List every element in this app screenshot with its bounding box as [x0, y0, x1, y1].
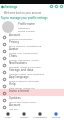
staticText: Communities — [33, 116, 47, 119]
staticText: Network usage, auto download — [9, 72, 45, 75]
staticText: App language — [9, 75, 29, 79]
button[interactable]: Account — [0, 33, 64, 40]
staticText: Log out — [9, 107, 18, 110]
staticText: Block contacts, disappearing — [9, 44, 42, 47]
staticText: Account — [9, 33, 21, 37]
button[interactable]: More — [59, 4, 64, 9]
staticText: Help centre, contact us — [9, 86, 35, 89]
button[interactable]: Storage and data — [0, 68, 64, 75]
button[interactable]: Invite a friend — [0, 89, 64, 96]
button[interactable]: Notifications — [0, 61, 64, 68]
staticText: Avatar — [9, 47, 19, 51]
button[interactable]: Privacy — [0, 40, 64, 47]
button[interactable]: Communities — [32, 110, 48, 120]
button[interactable]: Chats — [0, 110, 16, 120]
staticText: Updates — [9, 96, 21, 100]
staticText: phone number — [18, 29, 35, 32]
staticText: Chats — [5, 116, 11, 119]
button[interactable]: App language — [0, 75, 64, 82]
staticText: Chats — [9, 54, 17, 58]
button[interactable]: Back — [0, 4, 5, 9]
staticText: Notifications — [9, 61, 27, 65]
staticText: Security notifications — [9, 37, 33, 40]
button[interactable]: Updates — [16, 110, 32, 120]
staticText: Welcome back to your account — [4, 11, 42, 15]
button[interactable]: Avatar — [0, 47, 64, 54]
staticText: status text — [18, 26, 30, 29]
staticText: Invite a friend — [9, 89, 29, 93]
staticText: Account — [9, 103, 21, 107]
staticText: Theme, wallpapers, history — [9, 58, 40, 61]
staticText: Profile name — [18, 22, 35, 26]
staticText: Storage and data — [9, 68, 34, 72]
staticText: Help — [9, 82, 16, 86]
button[interactable]: Updates — [0, 96, 64, 103]
staticText: Updates — [20, 116, 29, 119]
staticText: Message, group & call tones — [9, 65, 41, 68]
button[interactable]: Camera — [54, 4, 59, 9]
button[interactable]: Settings — [48, 110, 64, 120]
staticText: Privacy — [9, 40, 20, 44]
staticText: Settings — [52, 116, 61, 119]
staticText: English (device's language) — [9, 79, 40, 82]
staticText: Tap to manage your profile settings — [1, 16, 48, 20]
staticText: Terms and privacy policy — [9, 100, 37, 103]
button[interactable]: Account — [0, 103, 64, 110]
button[interactable]: Chats — [0, 54, 64, 61]
button[interactable]: Search — [49, 4, 54, 9]
staticText: Settings — [5, 5, 18, 9]
staticText: Create, edit, profile photo — [9, 51, 38, 54]
button[interactable]: Help — [0, 82, 64, 89]
